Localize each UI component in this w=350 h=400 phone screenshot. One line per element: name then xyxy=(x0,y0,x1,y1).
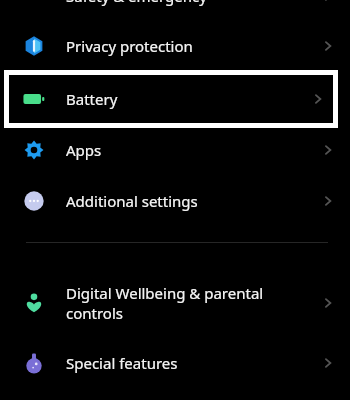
button[interactable]: Special features xyxy=(0,338,350,388)
staticText: Privacy protection xyxy=(66,36,320,56)
button[interactable]: Privacy protection xyxy=(0,21,350,71)
staticText: Safety & emergency xyxy=(66,0,320,6)
button[interactable]: Apps xyxy=(0,125,350,175)
button[interactable]: Battery xyxy=(4,70,338,128)
staticText: Special features xyxy=(66,353,320,373)
button[interactable]: Safety & emergency xyxy=(0,0,350,21)
staticText: Additional settings xyxy=(66,191,320,211)
staticText: Apps xyxy=(66,140,320,160)
staticText: Battery xyxy=(66,89,310,109)
staticText: Digital Wellbeing & parental controls xyxy=(66,283,320,323)
button[interactable]: Additional settings xyxy=(0,176,350,226)
button[interactable]: Digital Wellbeing & parental controls xyxy=(0,278,350,328)
